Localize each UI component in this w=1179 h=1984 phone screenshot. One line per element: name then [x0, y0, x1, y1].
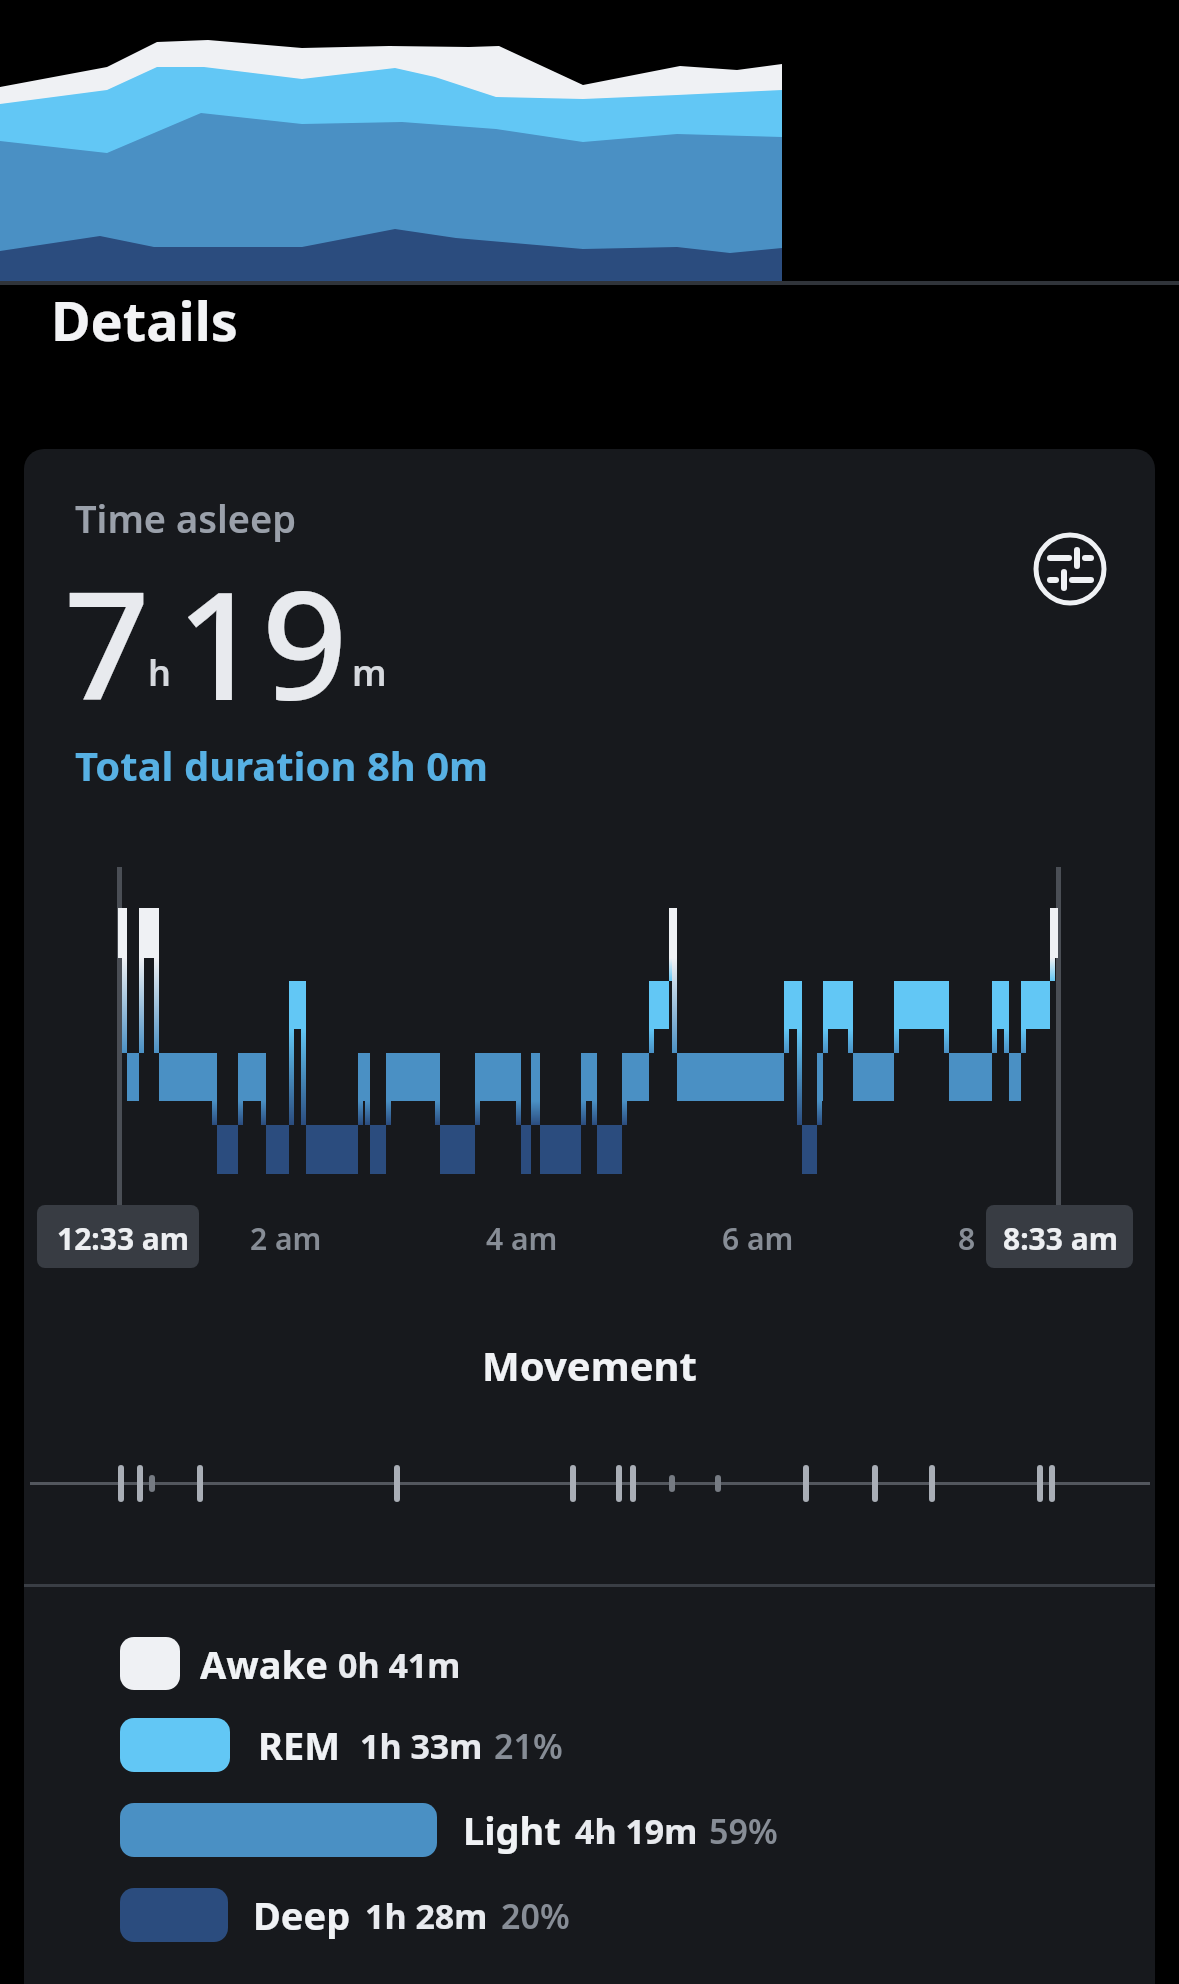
staticText: 6 am: [722, 1218, 794, 1259]
staticText: 59%: [709, 1808, 778, 1854]
staticText: Deep: [253, 1889, 351, 1941]
button[interactable]: [986, 1205, 1133, 1268]
staticText: 20%: [501, 1893, 570, 1939]
staticText: Awake: [200, 1638, 328, 1690]
staticText: 19: [176, 540, 348, 744]
staticText: 4 am: [486, 1218, 558, 1259]
button[interactable]: [1035, 534, 1105, 604]
staticText: Total duration 8h 0m: [75, 738, 489, 792]
staticText: 21%: [494, 1723, 563, 1769]
staticText: 1h 33m: [360, 1723, 483, 1769]
staticText: 12:33 am: [57, 1218, 190, 1259]
button[interactable]: [37, 1205, 199, 1268]
staticText: Movement: [482, 1338, 697, 1392]
staticText: 7: [64, 540, 150, 744]
staticText: 0h 41m: [338, 1642, 461, 1688]
staticText: Time asleep: [75, 492, 296, 544]
staticText: 4h 19m: [575, 1808, 698, 1854]
staticText: 1h 28m: [365, 1893, 488, 1939]
staticText: m: [352, 648, 387, 697]
staticText: Details: [51, 283, 238, 357]
staticText: REM: [258, 1719, 341, 1771]
staticText: 2 am: [250, 1218, 322, 1259]
staticText: Light: [463, 1804, 561, 1856]
staticText: h: [148, 648, 171, 697]
staticText: 8: [958, 1218, 976, 1259]
staticText: 8:33 am: [1003, 1218, 1118, 1259]
